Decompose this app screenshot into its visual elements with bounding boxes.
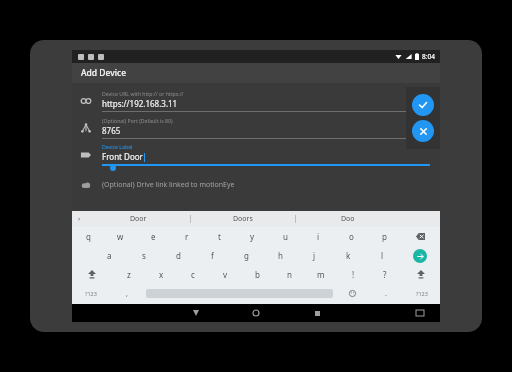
button[interactable]: Recents xyxy=(310,306,324,320)
button[interactable]: Screenshot xyxy=(414,307,426,319)
staticText: g xyxy=(244,250,249,261)
button[interactable]: Emoji xyxy=(335,284,369,303)
staticText: u xyxy=(283,231,288,242)
button[interactable]: c xyxy=(177,265,209,284)
staticText: 8765 xyxy=(102,125,121,136)
button[interactable]: Shift xyxy=(72,265,112,284)
staticText: Device URL with http:// or https:// xyxy=(102,90,184,97)
button[interactable]: , xyxy=(110,284,144,303)
button[interactable]: (Optional) Drive link linked to motionEy… xyxy=(72,174,440,196)
staticText: y xyxy=(250,231,255,242)
button[interactable]: f xyxy=(195,246,229,265)
staticText: i xyxy=(317,231,320,242)
button[interactable]: t xyxy=(203,227,236,246)
button[interactable]: d xyxy=(161,246,195,265)
button[interactable]: Doo xyxy=(296,211,400,227)
button[interactable]: Door xyxy=(86,211,190,227)
staticText: ?123 xyxy=(85,290,97,297)
staticText: (Optional) Port (Default is 80) xyxy=(102,117,173,124)
button[interactable]: o xyxy=(335,227,368,246)
button[interactable]: p xyxy=(368,227,401,246)
button[interactable]: Doors xyxy=(191,211,295,227)
staticText: https://192.168.3.11 xyxy=(102,98,178,109)
staticText: r xyxy=(185,231,189,242)
staticText: h xyxy=(278,250,283,261)
button[interactable]: Home xyxy=(249,306,263,320)
staticText: s xyxy=(142,250,146,261)
button[interactable]: ?123 xyxy=(72,284,110,303)
button[interactable]: g xyxy=(229,246,263,265)
button[interactable]: j xyxy=(297,246,331,265)
button[interactable]: n xyxy=(273,265,305,284)
staticText: v xyxy=(223,269,228,280)
button[interactable]: Enter xyxy=(413,249,427,263)
button[interactable]: i xyxy=(302,227,335,246)
staticText: Front Door xyxy=(102,151,143,162)
staticText: t xyxy=(218,231,221,242)
staticText: . xyxy=(385,289,387,299)
button[interactable]: ?123 xyxy=(403,284,440,303)
button[interactable]: a xyxy=(92,246,127,265)
staticText: Add Device xyxy=(81,67,127,79)
button[interactable]: Backspace xyxy=(401,227,440,246)
button[interactable]: r xyxy=(170,227,203,246)
button[interactable]: w xyxy=(104,227,137,246)
button[interactable]: e xyxy=(137,227,170,246)
button[interactable]: y xyxy=(236,227,269,246)
button[interactable]: Confirm xyxy=(412,94,434,116)
button[interactable]: v xyxy=(209,265,241,284)
button[interactable]: ? xyxy=(369,265,401,284)
staticText: f xyxy=(211,250,214,261)
staticText: e xyxy=(151,231,156,242)
staticText: p xyxy=(382,231,387,242)
button[interactable]: m xyxy=(305,265,337,284)
staticText: ? xyxy=(383,269,387,280)
button[interactable]: › xyxy=(72,211,86,227)
staticText: Doo xyxy=(341,214,355,224)
button[interactable]: s xyxy=(127,246,161,265)
button[interactable]: h xyxy=(263,246,297,265)
button[interactable]: l xyxy=(365,246,399,265)
staticText: c xyxy=(191,269,195,280)
button[interactable]: u xyxy=(269,227,302,246)
staticText: , xyxy=(126,289,128,299)
button[interactable]: Add Device xyxy=(72,63,440,83)
staticText: o xyxy=(349,231,354,242)
staticText: a xyxy=(107,250,112,261)
staticText: 8:04 xyxy=(422,52,435,61)
staticText: Door xyxy=(130,214,147,224)
button[interactable]: q xyxy=(72,227,104,246)
button[interactable]: Device Label xyxy=(72,141,440,168)
staticText: d xyxy=(176,250,181,261)
staticText: k xyxy=(346,250,351,261)
button[interactable]: z xyxy=(112,265,145,284)
staticText: x xyxy=(159,269,164,280)
staticText: q xyxy=(86,231,91,242)
staticText: b xyxy=(255,269,260,280)
button[interactable]: ! xyxy=(337,265,369,284)
button[interactable]: Shift xyxy=(401,265,440,284)
staticText: n xyxy=(287,269,292,280)
staticText: m xyxy=(317,269,325,280)
button[interactable]: k xyxy=(331,246,365,265)
staticText: l xyxy=(381,250,384,261)
button[interactable]: x xyxy=(145,265,177,284)
button[interactable]: (Optional) Port (Default is 80) xyxy=(72,114,440,141)
button[interactable]: b xyxy=(241,265,273,284)
staticText: (Optional) Drive link linked to motionEy… xyxy=(102,180,235,190)
staticText: ! xyxy=(352,269,355,280)
staticText: ?123 xyxy=(416,290,428,297)
staticText: Device Label xyxy=(102,143,133,150)
staticText: Doors xyxy=(233,214,253,224)
staticText: › xyxy=(78,214,81,224)
button[interactable]: Device URL with http:// or https:// xyxy=(72,87,440,114)
staticText: j xyxy=(313,250,316,261)
staticText: w xyxy=(117,231,124,242)
staticText: z xyxy=(127,269,131,280)
button[interactable]: Cancel xyxy=(412,120,434,142)
button[interactable]: Back xyxy=(189,306,203,320)
